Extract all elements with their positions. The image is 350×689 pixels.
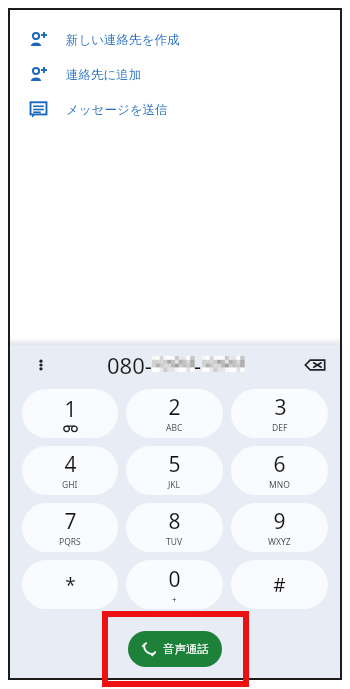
staticText: 080- xyxy=(107,350,152,380)
staticText: 1 xyxy=(64,395,77,424)
button[interactable]: Backspace xyxy=(302,352,328,378)
button[interactable]: 7 xyxy=(22,503,118,552)
button[interactable]: 9 xyxy=(231,503,328,552)
button[interactable]: 6 xyxy=(231,446,328,495)
button[interactable]: 2 xyxy=(126,389,223,438)
staticText: 0 xyxy=(168,565,181,594)
button[interactable]: 3 xyxy=(231,389,328,438)
button[interactable]: Voice call xyxy=(128,631,222,667)
staticText: - xyxy=(194,350,202,380)
button[interactable]: Add contact xyxy=(10,57,340,92)
button[interactable]: 8 xyxy=(126,503,223,552)
other: Voice call xyxy=(142,642,156,656)
button[interactable]: # xyxy=(231,560,328,609)
staticText: 6 xyxy=(273,450,286,479)
button[interactable]: 1 xyxy=(22,389,118,438)
button[interactable]: * xyxy=(22,560,118,609)
staticText: DEF xyxy=(272,422,288,434)
staticText: 連絡先に追加 xyxy=(66,67,142,83)
staticText: 2 xyxy=(168,393,181,422)
staticText: 3 xyxy=(274,393,287,422)
staticText: 8 xyxy=(168,507,181,536)
staticText: 7 xyxy=(64,507,77,536)
staticText: * xyxy=(65,572,76,598)
button[interactable]: 5 xyxy=(126,446,223,495)
staticText: 4 xyxy=(64,450,77,479)
staticText: PQRS xyxy=(59,536,81,548)
other: Add contact xyxy=(28,65,48,85)
button[interactable]: 0 xyxy=(126,560,223,609)
staticText: 5 xyxy=(168,450,181,479)
staticText: 音声通話 xyxy=(163,642,209,656)
staticText: 新しい連絡先を作成 xyxy=(66,32,180,48)
button[interactable]: More options xyxy=(29,353,53,377)
staticText: WXYZ xyxy=(268,536,291,548)
other: Add contact xyxy=(28,30,48,50)
staticText: 9 xyxy=(273,507,286,536)
staticText: + xyxy=(172,594,177,605)
staticText: GHI xyxy=(62,479,78,491)
button[interactable]: Send message xyxy=(10,92,340,127)
staticText: JKL xyxy=(168,479,181,491)
staticText: TUV xyxy=(166,536,183,548)
other: Send message xyxy=(29,100,48,119)
staticText: ABC xyxy=(166,422,183,434)
staticText: メッセージを送信 xyxy=(66,102,168,118)
button[interactable]: Add contact xyxy=(10,22,340,57)
staticText: # xyxy=(273,572,286,598)
staticText: MNO xyxy=(269,479,290,491)
button[interactable]: 4 xyxy=(22,446,118,495)
